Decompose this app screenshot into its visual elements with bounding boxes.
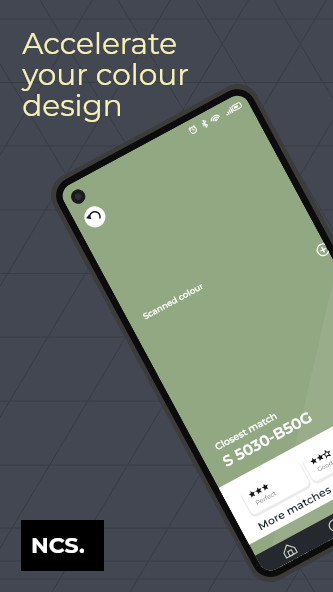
other: Accelerate your colour design	[0, 0, 333, 592]
